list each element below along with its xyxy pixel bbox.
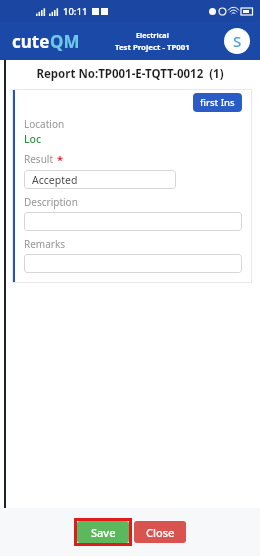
staticText: cute bbox=[12, 30, 50, 53]
button[interactable]: Account bbox=[224, 28, 250, 54]
button[interactable]: cute bbox=[10, 28, 82, 55]
staticText: Accepted bbox=[32, 173, 78, 187]
staticText: S bbox=[233, 31, 242, 51]
button[interactable] bbox=[24, 212, 242, 231]
staticText: first Ins bbox=[200, 96, 235, 109]
button[interactable] bbox=[24, 254, 242, 273]
button[interactable]: Close bbox=[134, 521, 186, 543]
staticText: Remarks bbox=[24, 237, 66, 251]
staticText: Electrical bbox=[136, 30, 169, 40]
button[interactable]: Save bbox=[77, 521, 129, 543]
staticText: Loc bbox=[24, 132, 42, 146]
staticText: Test Project - TP001 bbox=[115, 42, 190, 53]
staticText: 10:11 bbox=[63, 5, 88, 18]
staticText: QM bbox=[50, 30, 80, 53]
button[interactable]: first Ins bbox=[193, 93, 242, 112]
button[interactable]: Accepted bbox=[24, 170, 176, 189]
staticText: Description bbox=[24, 195, 78, 209]
staticText: * bbox=[57, 152, 63, 167]
staticText: Report No:TP001-E-TQTT-0012 (1) bbox=[0, 66, 260, 82]
staticText: Close bbox=[146, 525, 175, 540]
staticText: Location bbox=[24, 117, 65, 131]
staticText: Save bbox=[91, 525, 116, 540]
staticText: Result bbox=[24, 152, 54, 166]
